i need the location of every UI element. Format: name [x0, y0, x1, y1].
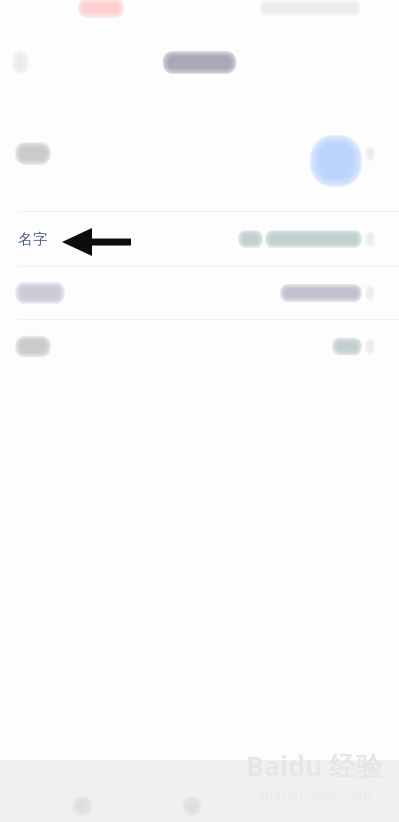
button[interactable]: [0, 267, 399, 319]
button[interactable]: Home: [182, 796, 202, 816]
button[interactable]: Back: [0, 50, 39, 74]
staticText: Baidu 经验: [246, 748, 383, 783]
staticText: 名字: [18, 230, 48, 248]
button[interactable]: Back: [72, 796, 92, 816]
button[interactable]: 名字: [0, 212, 399, 266]
button[interactable]: [0, 96, 399, 211]
button[interactable]: [0, 320, 399, 373]
